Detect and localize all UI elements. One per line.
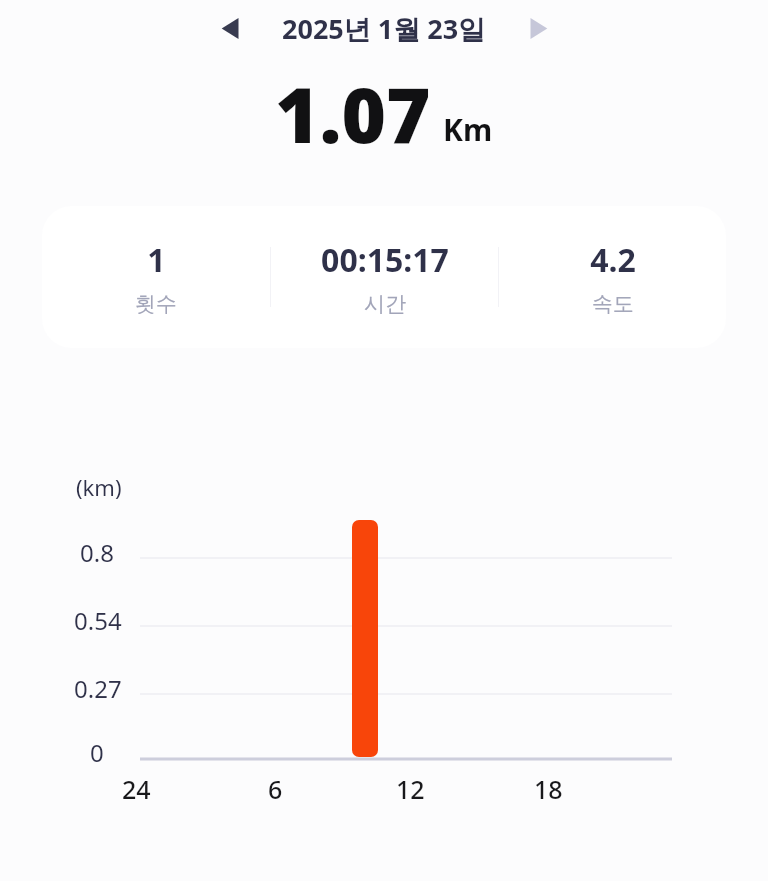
staticText: 0.54 xyxy=(74,604,122,637)
staticText: 1 xyxy=(147,238,166,282)
staticText: (km) xyxy=(76,472,122,502)
staticText: 0 xyxy=(90,736,104,769)
staticText: 12 xyxy=(396,772,425,806)
button[interactable]: 4.2 xyxy=(499,238,726,317)
button[interactable]: 00:15:17 xyxy=(271,238,498,317)
button[interactable]: 1 xyxy=(42,238,270,317)
staticText: Km xyxy=(443,109,493,150)
button[interactable]: Next day xyxy=(512,2,564,54)
staticText: 4.2 xyxy=(590,238,636,282)
staticText: 6 xyxy=(268,772,283,806)
staticText: 1.07 xyxy=(275,62,431,166)
button[interactable]: 1 xyxy=(42,206,726,348)
staticText: 시간 xyxy=(364,291,406,317)
staticText: 18 xyxy=(534,772,563,806)
staticText: 횟수 xyxy=(135,291,177,317)
staticText: 24 xyxy=(122,772,151,806)
staticText: 2025년 1월 23일 xyxy=(282,10,486,47)
staticText: 0.27 xyxy=(74,672,122,705)
staticText: 속도 xyxy=(592,291,634,317)
staticText: 00:15:17 xyxy=(321,238,449,282)
staticText: 0.8 xyxy=(80,536,114,569)
button[interactable]: Previous day xyxy=(204,2,256,54)
